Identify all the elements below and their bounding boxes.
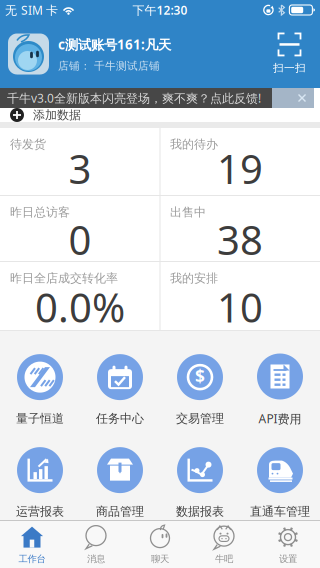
staticText: 千牛v3.0全新版本闪亮登场，爽不爽？点此反馈! xyxy=(7,90,261,106)
staticText: 无 SIM 卡 xyxy=(5,2,58,18)
staticText: 3 xyxy=(68,142,91,195)
staticText: 出售中 xyxy=(170,205,206,220)
button[interactable]: 昨日全店成交转化率 xyxy=(0,262,160,330)
staticText: $ xyxy=(195,365,205,388)
staticText: c测试账号161:凡天 xyxy=(58,36,171,53)
staticText: API费用 xyxy=(258,410,301,426)
staticText: 工作台 xyxy=(18,553,45,565)
staticText: 昨日全店成交转化率 xyxy=(10,271,118,286)
staticText: 添加数据 xyxy=(33,108,81,122)
button[interactable]: 昨日总访客 xyxy=(0,196,160,261)
button[interactable]: 牛吧 xyxy=(192,521,256,568)
button[interactable]: 数据报表 xyxy=(176,447,224,519)
button[interactable]: API费用 xyxy=(257,353,303,426)
staticText: 扫一扫 xyxy=(273,61,306,74)
button[interactable]: 消息 xyxy=(64,521,128,568)
staticText: 店铺： 千牛测试店铺 xyxy=(58,59,160,72)
staticText: 10 xyxy=(217,280,263,333)
button[interactable]: 直通车管理 xyxy=(250,447,310,519)
staticText: 设置 xyxy=(279,553,297,565)
button[interactable]: c测试账号161:凡天 xyxy=(8,33,171,74)
button[interactable]: 商品管理 xyxy=(96,447,144,519)
staticText: 聊天 xyxy=(151,553,169,565)
button[interactable]: 工作台 xyxy=(0,521,64,568)
button[interactable]: $ xyxy=(176,354,224,426)
staticText: 交易管理 xyxy=(176,411,224,426)
button[interactable]: 运营报表 xyxy=(16,447,64,519)
button[interactable]: 千牛v3.0全新版本闪亮登场，爽不爽？点此反馈! xyxy=(0,88,272,108)
staticText: 牛吧 xyxy=(215,553,233,565)
staticText: 0 xyxy=(68,213,91,266)
button[interactable]: 添加数据 xyxy=(0,108,320,122)
staticText: 我的待办 xyxy=(170,137,218,152)
staticText: 待发货 xyxy=(10,137,46,152)
button[interactable]: 我的待办 xyxy=(160,128,320,195)
staticText: 消息 xyxy=(87,553,105,565)
button[interactable]: 任务中心 xyxy=(96,354,144,426)
staticText: 0.0% xyxy=(35,280,125,333)
staticText: 量子恒道 xyxy=(16,411,64,426)
staticText: 昨日总访客 xyxy=(10,205,70,220)
button[interactable]: 我的安排 xyxy=(160,262,320,330)
button[interactable]: 关闭 xyxy=(272,88,314,108)
staticText: 商品管理 xyxy=(96,504,144,519)
staticText: 19 xyxy=(217,142,263,195)
staticText: 运营报表 xyxy=(16,504,64,519)
staticText: 38 xyxy=(217,213,263,266)
button[interactable]: 扫一扫 xyxy=(273,33,320,74)
staticText: 直通车管理 xyxy=(250,504,310,519)
staticText: 任务中心 xyxy=(96,411,144,426)
staticText: 数据报表 xyxy=(176,504,224,519)
button[interactable]: 聊天 xyxy=(128,521,192,568)
button[interactable]: 量子恒道 xyxy=(16,354,64,426)
staticText: 我的安排 xyxy=(170,271,218,286)
button[interactable]: 出售中 xyxy=(160,196,320,261)
staticText: 下午12:30 xyxy=(132,2,187,18)
button[interactable]: 设置 xyxy=(256,521,320,568)
button[interactable]: 待发货 xyxy=(0,128,160,195)
